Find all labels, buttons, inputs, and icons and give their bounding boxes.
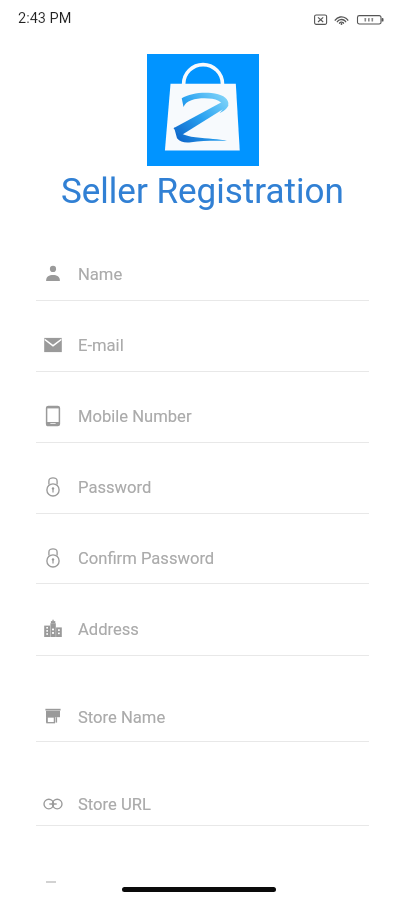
button[interactable]: Password	[36, 470, 369, 504]
staticText: Store URL	[78, 795, 151, 814]
button[interactable]: Store URL	[36, 787, 369, 821]
staticText: Name	[78, 265, 123, 284]
staticText: Store Name	[78, 708, 166, 727]
staticText: Confirm Password	[78, 549, 215, 568]
button[interactable]: Address	[36, 612, 369, 646]
staticText: Address	[78, 620, 139, 639]
staticText: Seller Registration	[61, 171, 344, 212]
other: Silent mode, Wi-Fi and battery status	[312, 13, 388, 27]
button[interactable]: Mobile Number	[36, 399, 369, 433]
staticText: 2:43 PM	[18, 10, 72, 27]
staticText: E-mail	[78, 336, 124, 355]
button[interactable]: Confirm Password	[36, 541, 369, 575]
button[interactable]: Name	[36, 257, 369, 291]
other: App logo	[147, 54, 259, 166]
button[interactable]: Store Name	[36, 700, 369, 734]
staticText: Mobile Number	[78, 407, 192, 426]
staticText: Password	[78, 478, 152, 497]
button[interactable]: E-mail	[36, 328, 369, 362]
